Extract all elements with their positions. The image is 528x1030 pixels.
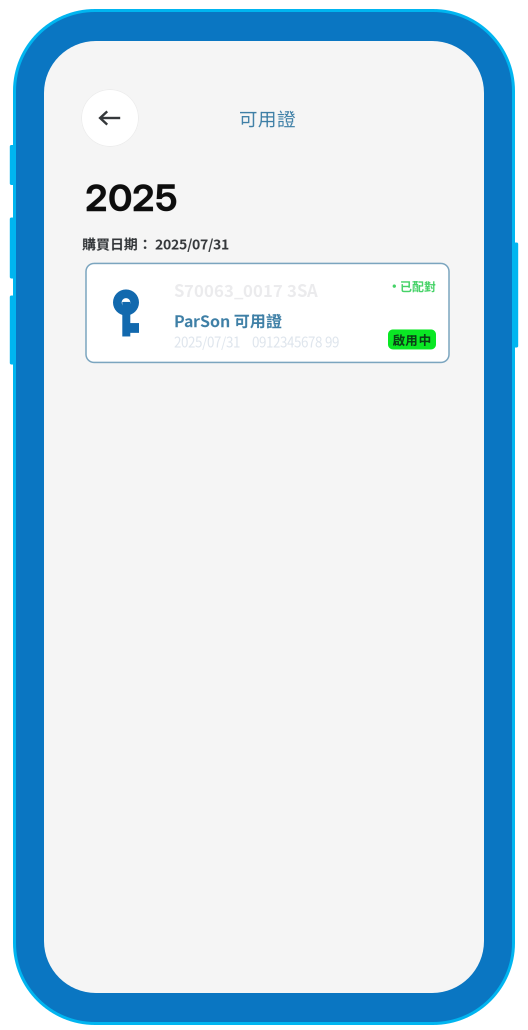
button[interactable]: Back [81, 89, 139, 147]
staticText: 購買日期： 2025/07/31 [82, 233, 229, 253]
staticText: 2025/07/31 0912345678 99 [174, 332, 339, 351]
staticText: 啟用中 [392, 330, 431, 349]
staticText: ParSon 可用證 [174, 309, 282, 332]
staticText: 已配對 [400, 277, 436, 295]
staticText: 可用證 [239, 104, 296, 131]
staticText: S70063_0017 3SA [174, 278, 318, 302]
staticText: 2025 [85, 175, 178, 220]
